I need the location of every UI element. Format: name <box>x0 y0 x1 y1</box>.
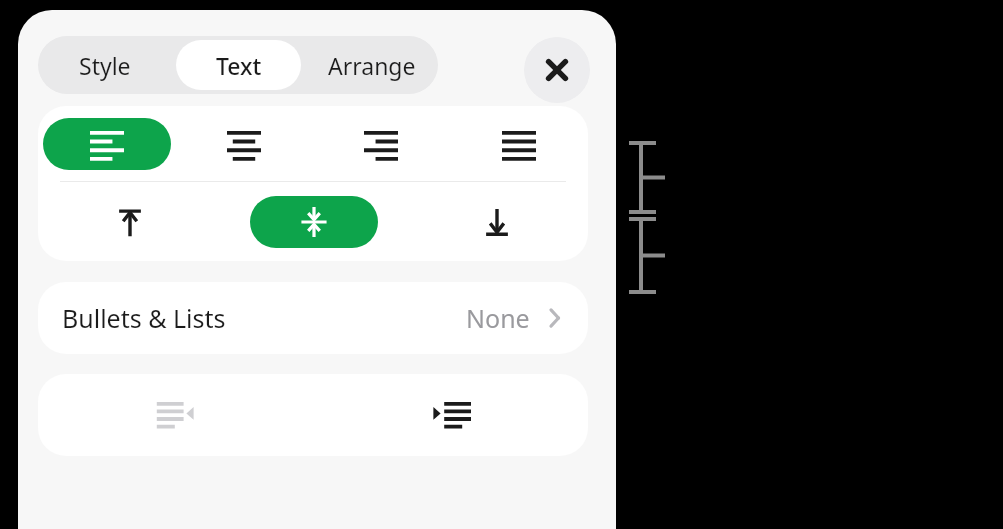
staticText: None <box>466 301 530 335</box>
button[interactable]: Justify <box>471 118 567 170</box>
button[interactable]: Align top <box>82 196 178 248</box>
button[interactable]: Increase indent <box>313 374 588 456</box>
button[interactable]: Arrange <box>309 40 434 90</box>
button[interactable]: Bullets & Lists <box>38 282 588 354</box>
staticText: Bullets & Lists <box>62 301 226 335</box>
button[interactable]: Align bottom <box>449 196 545 248</box>
button[interactable]: Text <box>176 40 301 90</box>
button[interactable]: Align right <box>333 118 429 170</box>
button[interactable]: Style <box>42 40 168 90</box>
button[interactable]: Align left <box>43 118 171 170</box>
staticText: Arrange <box>328 50 416 81</box>
button[interactable]: Decrease indent <box>38 374 313 456</box>
staticText: Text <box>216 50 262 81</box>
button[interactable]: Close <box>524 37 590 103</box>
button[interactable]: Align middle <box>250 196 378 248</box>
button[interactable]: Align center <box>196 118 292 170</box>
staticText: Style <box>79 50 131 81</box>
